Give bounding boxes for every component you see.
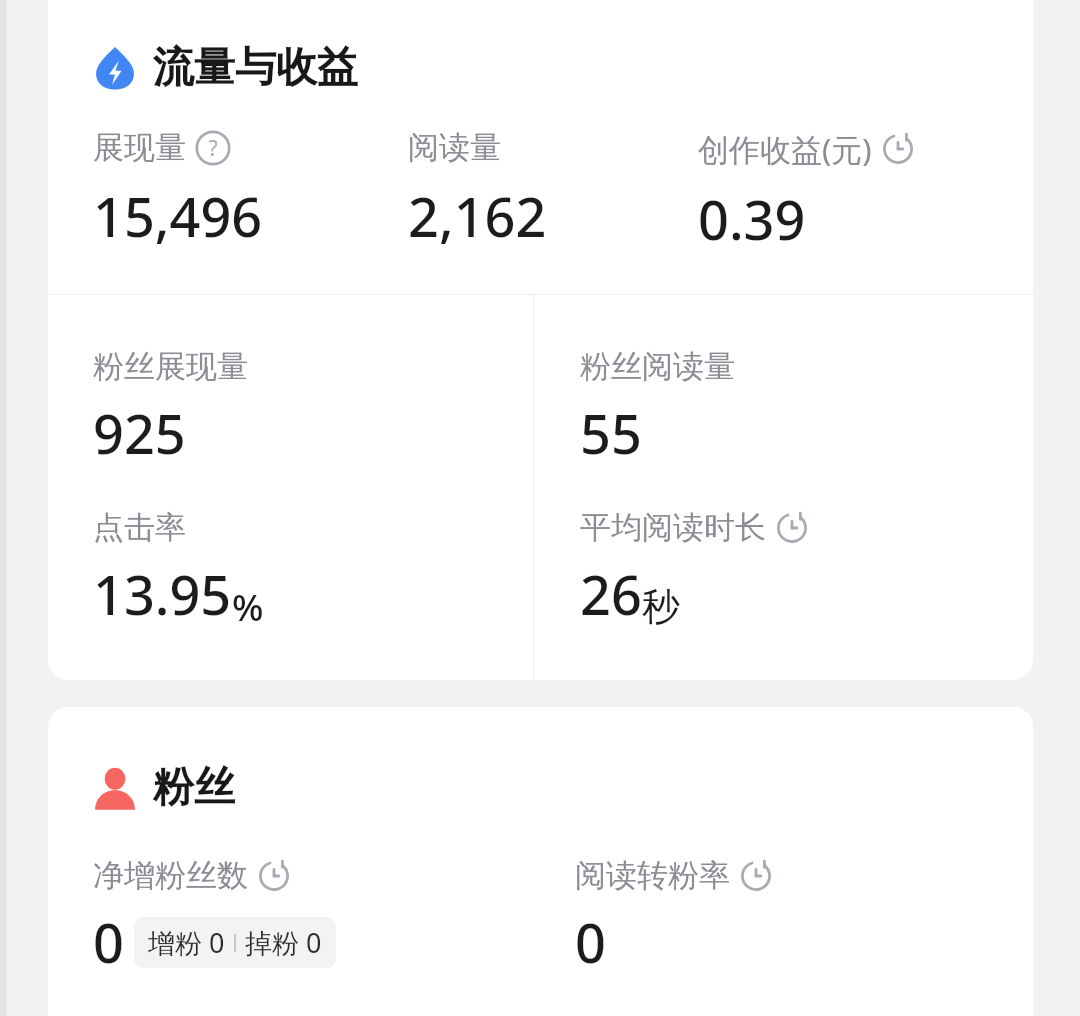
staticText: 阅读转粉率	[575, 856, 730, 895]
staticText: 26	[580, 557, 642, 631]
staticText: 掉粉 0	[245, 924, 322, 961]
staticText: 增粉 0	[148, 924, 225, 961]
other: Help	[195, 130, 231, 166]
other: Updated periodically	[881, 132, 915, 166]
staticText: 粉丝展现量	[93, 347, 248, 386]
staticText: 阅读量	[408, 128, 501, 167]
staticText: 粉丝阅读量	[580, 347, 735, 386]
staticText: 0	[575, 905, 606, 979]
button[interactable]: 阅读量	[408, 128, 698, 253]
staticText: 展现量	[93, 128, 186, 167]
button[interactable]: 展现量	[93, 128, 408, 253]
button[interactable]: 净增粉丝数	[93, 856, 575, 979]
staticText: 创作收益(元)	[698, 128, 872, 170]
staticText: 2,162	[408, 179, 547, 253]
button[interactable]: 粉丝	[93, 762, 235, 814]
staticText: 0	[93, 905, 124, 979]
staticText: 秒	[642, 583, 680, 631]
other: Updated periodically	[775, 511, 809, 545]
staticText: 0.39	[698, 182, 806, 256]
staticText: 15,496	[93, 179, 263, 253]
staticText: 55	[580, 396, 642, 470]
staticText: 粉丝	[153, 762, 235, 814]
staticText: 点击率	[93, 508, 186, 547]
staticText: 平均阅读时长	[580, 508, 766, 547]
staticText: 13.95	[93, 557, 232, 631]
button[interactable]: 粉丝展现量	[93, 347, 248, 470]
staticText: 流量与收益	[153, 42, 358, 94]
staticText: 925	[93, 396, 186, 470]
staticText: ?	[208, 134, 218, 163]
button[interactable]: 粉丝阅读量	[580, 347, 735, 470]
other: Updated periodically	[739, 859, 773, 893]
staticText: 净增粉丝数	[93, 856, 248, 895]
button[interactable]: 创作收益(元)	[698, 128, 1013, 256]
button[interactable]: 点击率	[93, 508, 264, 631]
button[interactable]: 阅读转粉率	[575, 856, 1033, 979]
button[interactable]: 流量与收益	[93, 42, 358, 94]
button[interactable]: 平均阅读时长	[580, 508, 809, 631]
other: Updated periodically	[257, 859, 291, 893]
staticText: %	[232, 581, 264, 631]
